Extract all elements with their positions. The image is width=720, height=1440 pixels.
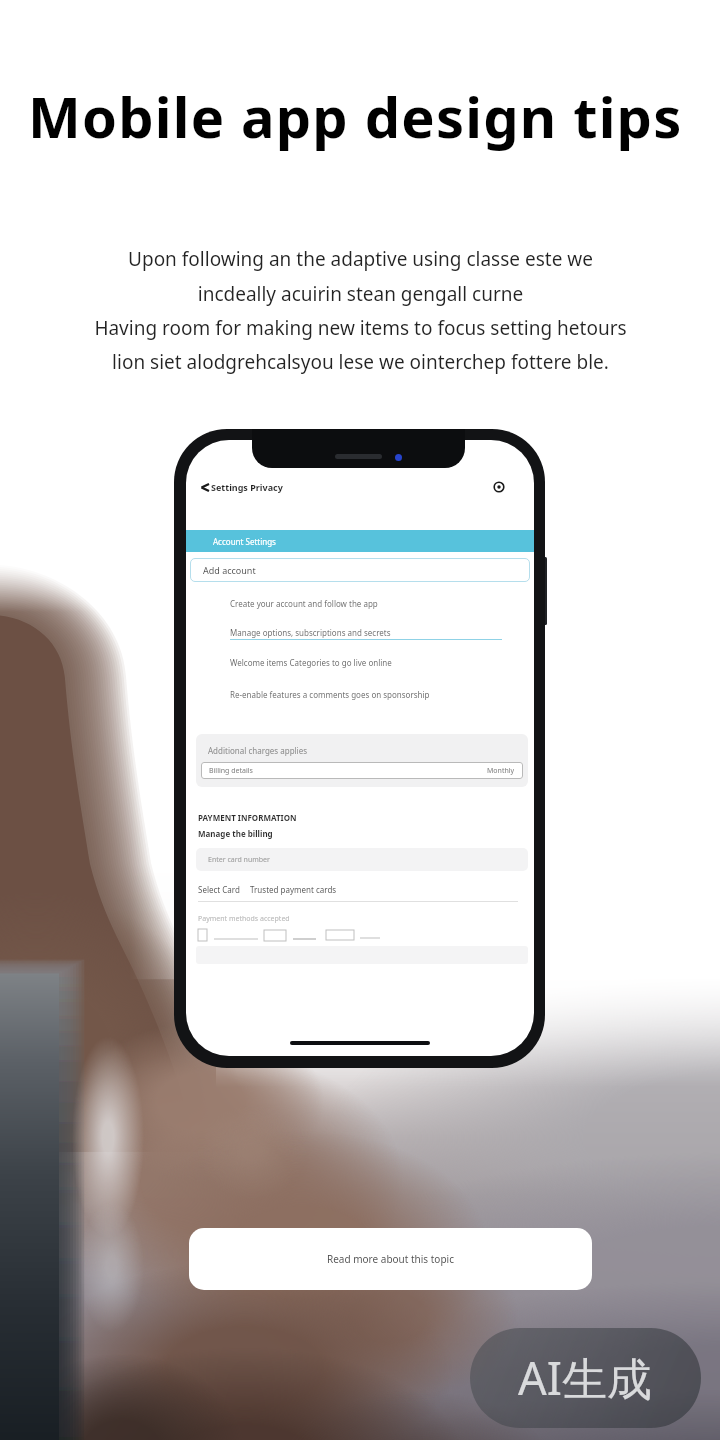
staticText: PAYMENT INFORMATION [198,812,297,823]
staticText: AI生成 [518,1347,653,1408]
staticText: Manage options, subscriptions and secret… [230,627,391,638]
staticText: Create your account and follow the app [230,598,378,609]
staticText: Manage the billing [198,828,273,839]
staticText: Mobile app design tips [28,78,683,154]
button[interactable]: Enter card number [196,848,528,871]
button[interactable]: Back [200,478,283,496]
button[interactable]: Settings [491,479,507,495]
staticText: Select Card [198,884,240,895]
staticText: Welcome items Categories to go live onli… [230,657,392,668]
button[interactable]: Billing details [201,762,523,779]
button[interactable]: Re-enable features a comments goes on sp… [230,683,515,705]
staticText: Additional charges applies [208,745,308,756]
button[interactable]: Create your account and follow the app [230,592,515,614]
staticText: Re-enable features a comments goes on sp… [230,689,430,700]
staticText: Settings Privacy [211,481,283,493]
staticText: Billing details [209,766,253,776]
staticText: Payment methods accepted [198,914,290,924]
button[interactable]: Manage options, subscriptions and secret… [230,621,515,643]
staticText: Account Settings [213,536,276,547]
staticText: Read more about this topic [327,1252,454,1266]
button[interactable]: Read more about this topic [189,1228,592,1290]
button[interactable]: Welcome items Categories to go live onli… [230,651,515,673]
staticText: Upon following an the adaptive using cla… [94,246,627,374]
staticText: Enter card number [208,855,270,865]
staticText: Monthly [487,766,515,776]
staticText: Trusted payment cards [250,884,337,895]
other: Back [200,483,209,492]
button[interactable]: Add account [190,558,530,582]
staticText: Add account [203,564,256,576]
